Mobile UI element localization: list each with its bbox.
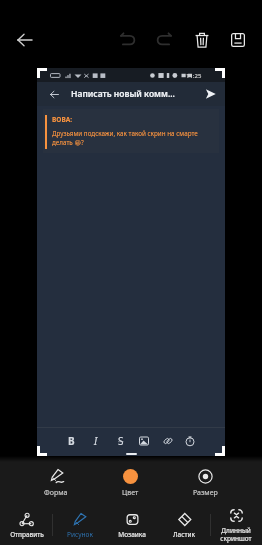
staticText: Написать новый комм... (71, 88, 211, 100)
staticText: S (118, 434, 124, 448)
staticText: Форма (44, 488, 68, 498)
button[interactable]: Рисунок (53, 504, 106, 545)
button[interactable]: Мозаика (106, 504, 158, 545)
staticText: Друзьями подскажи, как такой скрин на см… (52, 129, 216, 147)
staticText: Длинный скриншот (220, 526, 252, 543)
button[interactable]: Размер (168, 462, 243, 504)
button[interactable]: Send (198, 82, 222, 106)
button[interactable]: Форма (19, 462, 93, 504)
button[interactable]: Ластик (158, 504, 210, 545)
button[interactable]: Back (42, 82, 66, 106)
button[interactable]: I (87, 432, 105, 450)
staticText: Рисунок (67, 530, 93, 539)
staticText: Мозаика (118, 530, 146, 539)
button[interactable]: Link (159, 432, 177, 450)
staticText: Отправить (10, 530, 44, 539)
button[interactable]: Image (135, 432, 153, 450)
staticText: B (68, 434, 75, 448)
button[interactable]: Delete (184, 22, 220, 58)
staticText: I (94, 434, 98, 448)
button[interactable]: Undo (110, 21, 146, 57)
button[interactable]: Длинный скриншот (210, 504, 262, 545)
button[interactable]: Redo (146, 21, 182, 57)
button[interactable]: B (62, 432, 80, 450)
button[interactable]: Back (7, 22, 43, 58)
button[interactable]: Save (220, 22, 256, 58)
staticText: Ластик (173, 530, 195, 539)
staticText: Цвет (122, 488, 139, 498)
staticText: BOBA: (52, 115, 73, 124)
staticText: Размер (193, 488, 218, 498)
button[interactable]: Отправить (0, 504, 53, 545)
button[interactable]: Emoji (181, 432, 199, 450)
button[interactable]: Цвет (93, 462, 168, 504)
button[interactable]: S (112, 432, 130, 450)
staticText: 11:25 (186, 72, 202, 80)
